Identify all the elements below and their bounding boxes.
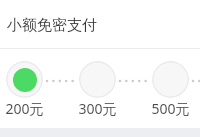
button[interactable] xyxy=(152,61,189,98)
button[interactable] xyxy=(6,61,43,98)
button[interactable] xyxy=(79,61,116,98)
staticText: 500元 xyxy=(151,99,190,117)
staticText: 小额免密支付 xyxy=(7,16,97,35)
staticText: 300元 xyxy=(78,99,117,117)
staticText: 200元 xyxy=(5,99,44,117)
